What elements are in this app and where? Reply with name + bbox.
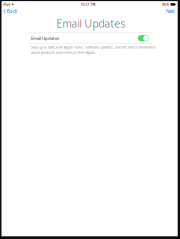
staticText: Next xyxy=(166,8,175,14)
staticText: 86% xyxy=(162,2,169,7)
staticText: Stay up to date with Apple news, softwar… xyxy=(31,45,156,55)
staticText: Email Updates xyxy=(57,16,126,31)
button[interactable]: Next xyxy=(166,8,175,14)
staticText: Back xyxy=(7,8,17,14)
button[interactable]: Back xyxy=(4,8,17,14)
staticText: 10:21 PM xyxy=(80,2,95,7)
button[interactable]: Email Updates xyxy=(28,33,152,43)
staticText: Email Updates xyxy=(31,35,59,41)
staticText: iPad xyxy=(3,2,10,7)
